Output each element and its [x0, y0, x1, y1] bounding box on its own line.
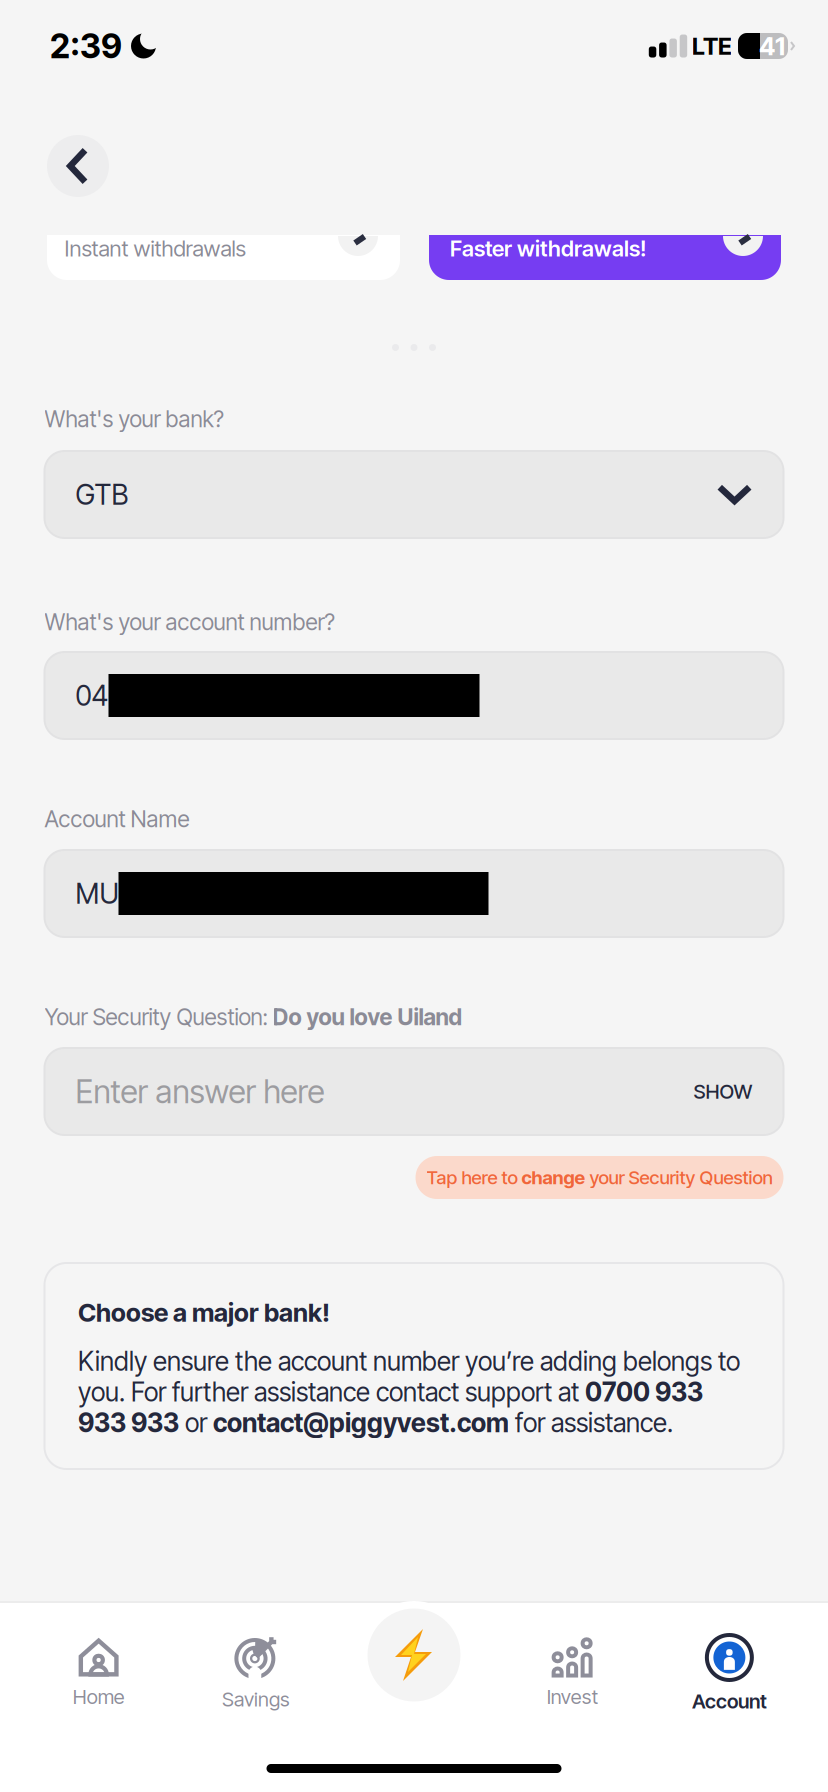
- staticText: change: [521, 1166, 585, 1189]
- staticText: 04: [75, 679, 108, 712]
- staticText: GTB: [75, 478, 128, 511]
- staticText: Kindly ensure the account number you’re …: [78, 1346, 740, 1438]
- staticText: Invest: [547, 1684, 598, 1709]
- staticText: What's your account number?: [44, 608, 334, 636]
- button[interactable]: Back: [47, 135, 109, 197]
- button[interactable]: Faster withdrawals!: [429, 235, 781, 280]
- button[interactable]: Tap here to: [415, 1156, 783, 1199]
- button[interactable]: SHOW: [693, 1079, 752, 1104]
- staticText: Instant withdrawals: [64, 235, 245, 262]
- button[interactable]: Invest: [493, 1637, 651, 1709]
- button[interactable]: Instant withdrawals: [47, 235, 400, 280]
- staticText: Tap here to: [426, 1166, 521, 1189]
- staticText: Account: [692, 1689, 767, 1713]
- staticText: Account Name: [44, 805, 189, 833]
- button[interactable]: Home: [20, 1637, 177, 1709]
- staticText: SHOW: [693, 1079, 752, 1104]
- staticText: LTE: [692, 31, 732, 60]
- staticText: 2:39: [50, 26, 122, 66]
- staticText: MU: [75, 877, 118, 910]
- staticText: Do you love Uiland: [272, 1003, 462, 1031]
- staticText: Faster withdrawals!: [450, 235, 646, 262]
- button[interactable]: Quick actions: [360, 1593, 468, 1717]
- staticText: your Security Question: [585, 1166, 772, 1189]
- staticText: Choose a major bank!: [78, 1297, 330, 1328]
- staticText: Home: [73, 1684, 125, 1709]
- staticText: What's your bank?: [44, 405, 223, 433]
- button[interactable]: Account: [651, 1633, 808, 1713]
- staticText: Your Security Question:: [44, 1003, 272, 1031]
- staticText: Savings: [222, 1687, 290, 1711]
- button[interactable]: Savings: [177, 1635, 334, 1711]
- staticText: Enter answer here: [75, 1072, 324, 1111]
- staticText: 41: [759, 31, 785, 61]
- button[interactable]: GTB: [44, 451, 783, 538]
